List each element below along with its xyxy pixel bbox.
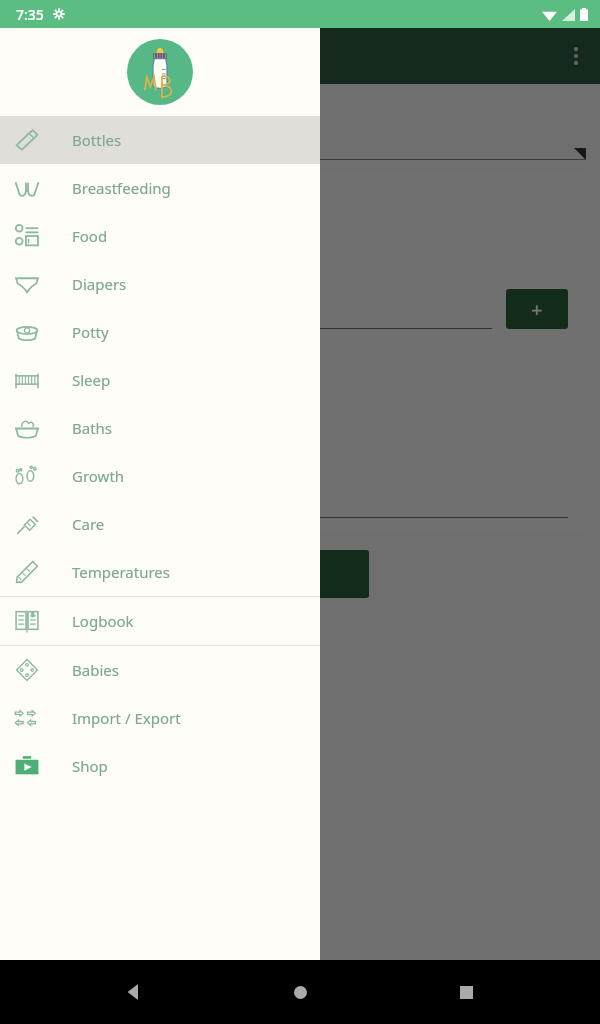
button[interactable]: Logbook xyxy=(0,597,320,645)
button[interactable]: Import / Export xyxy=(0,694,320,742)
staticText: Food xyxy=(72,226,108,246)
staticText: Shop xyxy=(72,756,108,776)
button[interactable]: Temperatures xyxy=(0,548,320,596)
button[interactable]: Diapers xyxy=(0,260,320,308)
staticText: 7:35 xyxy=(16,5,44,24)
staticText: Potty xyxy=(72,322,109,342)
button[interactable]: Sleep xyxy=(0,356,320,404)
button[interactable]: Care xyxy=(0,500,320,548)
button[interactable]: Breastfeeding xyxy=(0,164,320,212)
staticText: Bottles xyxy=(72,130,122,150)
staticText: Care xyxy=(72,514,105,534)
staticText: Logbook xyxy=(72,611,134,631)
staticText: Import / Export xyxy=(72,708,181,728)
button[interactable]: More options xyxy=(552,32,600,80)
button[interactable]: Baths xyxy=(0,404,320,452)
staticText: Growth xyxy=(72,466,125,486)
button[interactable]: Recents xyxy=(434,960,498,1024)
button[interactable]: Growth xyxy=(0,452,320,500)
staticText: Breastfeeding xyxy=(72,178,171,198)
staticText: Baths xyxy=(72,418,113,438)
button[interactable]: Bottles xyxy=(0,116,320,164)
staticText: Temperatures xyxy=(72,562,170,582)
button[interactable]: Shop xyxy=(0,742,320,790)
button[interactable]: Babies xyxy=(0,646,320,694)
button[interactable]: Add quantity xyxy=(506,289,568,329)
staticText: Option xyxy=(32,401,84,423)
button[interactable]: Back xyxy=(102,960,166,1024)
staticText: + xyxy=(531,296,543,323)
staticText: Babies xyxy=(72,660,119,680)
button[interactable]: Add xyxy=(14,550,369,598)
staticText: Option xyxy=(32,371,84,393)
button[interactable]: Home xyxy=(268,960,332,1024)
button[interactable]: Food xyxy=(0,212,320,260)
button[interactable]: Potty xyxy=(0,308,320,356)
staticText: 30/10/2020 xyxy=(32,194,150,224)
staticText: Sleep xyxy=(72,370,111,390)
staticText: Diapers xyxy=(72,274,127,294)
